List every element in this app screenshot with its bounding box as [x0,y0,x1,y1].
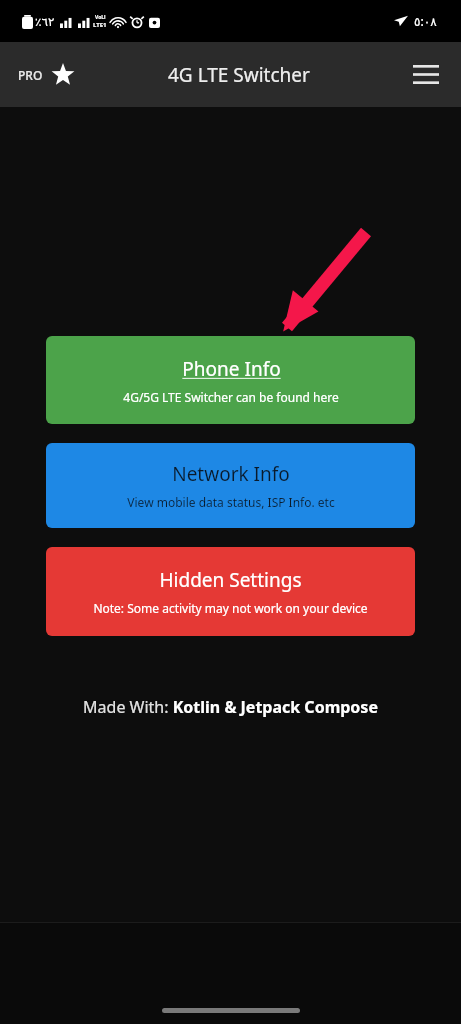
staticText: Phone Info [182,356,281,382]
staticText: Network Info [172,461,290,487]
staticText: ٥:٠٨ [414,13,437,29]
staticText: VoLl [95,14,106,21]
button[interactable]: Phone Info [46,336,415,424]
staticText: 4G LTE Switcher [168,62,310,88]
button[interactable]: Network Info [46,443,415,528]
staticText: Note: Some activity may not work on your… [93,600,368,616]
button[interactable]: Menu [403,55,449,94]
staticText: PRO [18,67,43,83]
staticText: LTE1 [93,21,107,29]
staticText: View mobile data status, ISP Info. etc [127,494,335,510]
button[interactable]: Hidden Settings [46,547,415,636]
button[interactable]: PRO [14,57,79,93]
staticText: Made With: Kotlin & Jetpack Compose [83,696,378,718]
staticText: ٪٦٢ [35,15,55,29]
staticText: Hidden Settings [159,567,302,593]
staticText: 4G/5G LTE Switcher can be found here [123,389,339,405]
